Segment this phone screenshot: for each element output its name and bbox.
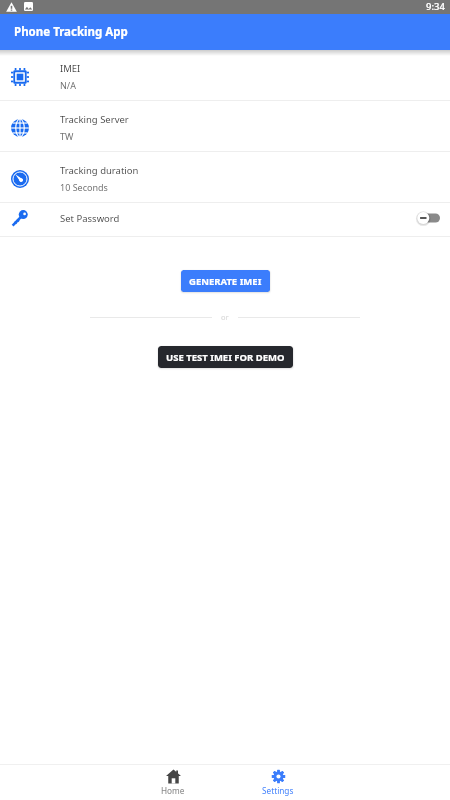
staticText: Tracking Server: [60, 113, 129, 126]
staticText: 10 Seconds: [60, 181, 108, 193]
button[interactable]: Set Password toggle: [414, 210, 440, 226]
staticText: Home: [161, 785, 185, 796]
button[interactable]: Tracking Server: [0, 101, 450, 151]
staticText: or: [221, 312, 229, 322]
button[interactable]: Tracking duration: [0, 152, 450, 202]
button[interactable]: IMEI: [0, 50, 450, 100]
button[interactable]: Set Password: [0, 203, 450, 236]
staticText: Settings: [262, 785, 294, 796]
staticText: USE TEST IMEI FOR DEMO: [166, 351, 285, 364]
staticText: TW: [60, 130, 74, 142]
button[interactable]: GENERATE IMEI: [181, 270, 270, 292]
staticText: Tracking duration: [60, 164, 139, 177]
staticText: IMEI: [60, 62, 81, 75]
button[interactable]: Settings: [252, 766, 304, 799]
button[interactable]: USE TEST IMEI FOR DEMO: [158, 346, 293, 368]
staticText: GENERATE IMEI: [189, 275, 262, 288]
staticText: Phone Tracking App: [14, 24, 128, 40]
staticText: Set Password: [60, 212, 120, 225]
staticText: N/A: [60, 79, 76, 91]
staticText: 9:34: [426, 0, 445, 13]
button[interactable]: Home: [151, 766, 195, 799]
